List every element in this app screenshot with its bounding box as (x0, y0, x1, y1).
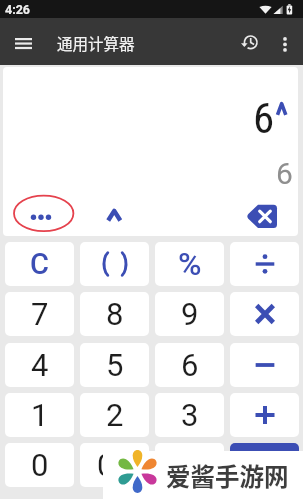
button[interactable] (235, 28, 263, 56)
button[interactable] (80, 242, 149, 286)
button[interactable] (230, 343, 299, 387)
button[interactable]: C (5, 242, 74, 286)
staticText: 00 (97, 447, 132, 483)
staticText: 1 (31, 397, 49, 433)
button[interactable] (21, 201, 63, 233)
button[interactable]: 8 (80, 292, 149, 336)
button[interactable] (8, 28, 39, 59)
staticText: 4 (31, 347, 49, 383)
staticText: % (178, 245, 202, 283)
button[interactable]: 00 (80, 443, 149, 487)
button[interactable] (241, 199, 283, 233)
button[interactable]: 2 (80, 393, 149, 437)
staticText: 通用计算器 (57, 32, 135, 54)
staticText: 2 (106, 397, 124, 433)
button[interactable]: 0 (5, 443, 74, 487)
button[interactable] (230, 292, 299, 336)
staticText: C (30, 247, 49, 281)
button[interactable]: 9 (155, 292, 224, 336)
staticText: 4:26 (5, 2, 31, 17)
staticText: 6 (276, 156, 293, 191)
button[interactable]: 6 (155, 343, 224, 387)
staticText: . (185, 447, 194, 483)
button[interactable]: 1 (5, 393, 74, 437)
staticText: 6 (253, 93, 275, 143)
button[interactable]: 7 (5, 292, 74, 336)
button[interactable] (230, 242, 299, 286)
staticText: 3 (181, 397, 199, 433)
staticText: 8 (106, 296, 124, 332)
button[interactable]: 3 (155, 393, 224, 437)
staticText: 6 (181, 347, 199, 383)
staticText: 爱酱手游网 (166, 458, 289, 493)
button[interactable]: 5 (80, 343, 149, 387)
button[interactable] (230, 393, 299, 437)
button[interactable] (271, 30, 298, 58)
button[interactable] (230, 443, 299, 487)
button[interactable] (93, 201, 135, 233)
staticText: 0 (31, 447, 49, 483)
staticText: 7 (31, 296, 49, 332)
staticText: 5 (106, 347, 124, 383)
button[interactable]: . (155, 443, 224, 487)
button[interactable]: 4 (5, 343, 74, 387)
button[interactable]: % (155, 242, 224, 286)
staticText: 9 (181, 296, 199, 332)
